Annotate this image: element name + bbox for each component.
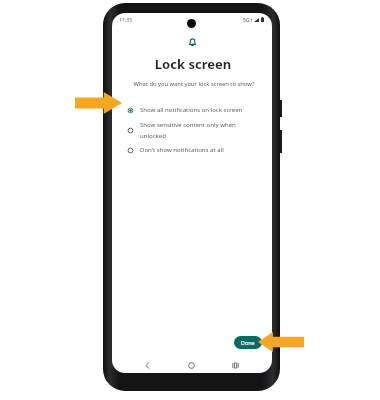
button[interactable]: Done <box>234 336 262 349</box>
staticText: What do you want your lock screen to sho… <box>114 80 272 88</box>
staticText: 5G+ <box>243 16 253 23</box>
button[interactable]: Show sensitive content only when unlocke… <box>112 121 272 140</box>
other: Recent apps <box>231 361 240 370</box>
staticText: Done <box>241 339 255 346</box>
staticText: Show sensitive content only when unlocke… <box>140 121 245 140</box>
button[interactable]: Don't show notifications at all <box>112 146 272 154</box>
button[interactable]: Back <box>125 358 169 373</box>
other: Home <box>187 361 196 370</box>
staticText: Lock screen <box>113 55 272 73</box>
other: Back <box>143 361 152 370</box>
staticText: Show all notifications on lock screen <box>140 106 245 114</box>
staticText: 11:35 <box>119 16 133 23</box>
button[interactable]: Home <box>169 358 213 373</box>
staticText: Don't show notifications at all <box>140 146 245 154</box>
button[interactable]: Recent apps <box>213 358 257 373</box>
button[interactable]: Show all notifications on lock screen <box>112 106 272 114</box>
